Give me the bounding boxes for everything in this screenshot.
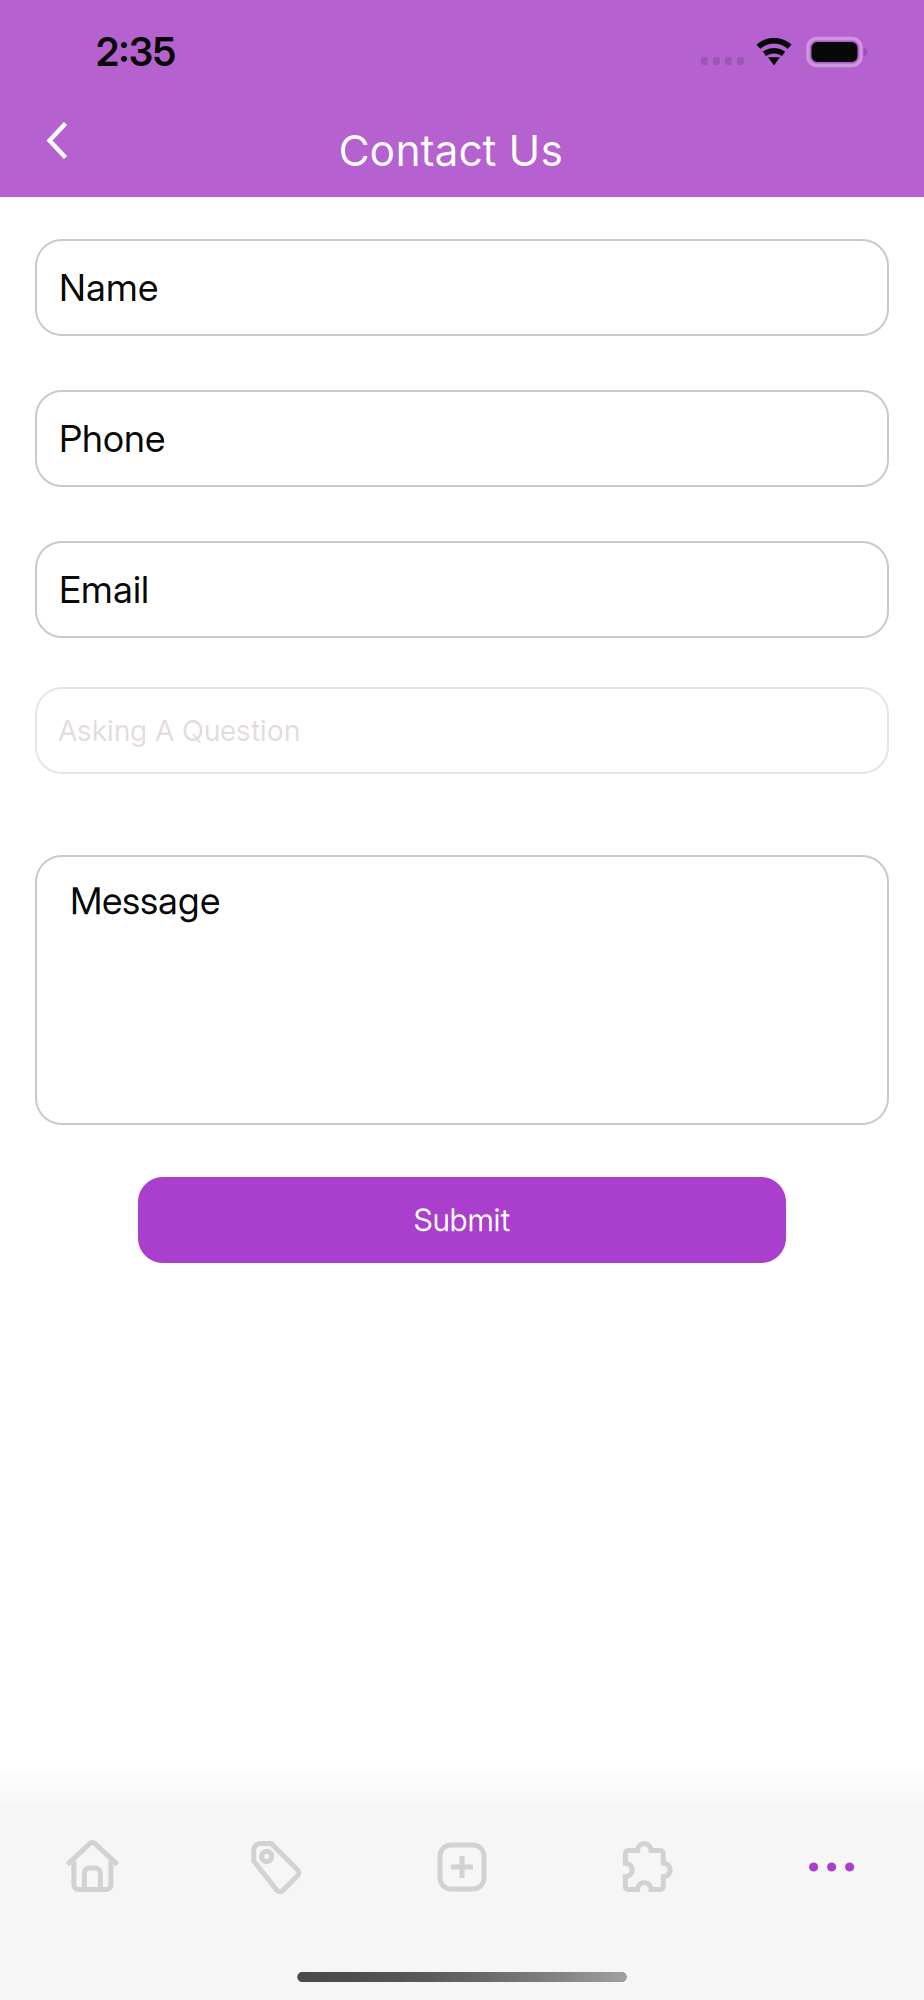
staticText: Message (70, 878, 220, 923)
button[interactable]: More (739, 1824, 924, 1910)
staticText: Name (59, 265, 158, 310)
button[interactable]: Home (0, 1824, 185, 1910)
staticText: Email (59, 567, 149, 612)
staticText: Submit (413, 1201, 510, 1238)
button[interactable]: Create (370, 1824, 554, 1910)
button[interactable]: Tags (185, 1824, 370, 1910)
button[interactable]: Submit (138, 1177, 786, 1263)
staticText: Phone (59, 416, 165, 461)
staticText: Asking A Question (58, 713, 300, 748)
button[interactable]: Extensions (554, 1824, 739, 1910)
staticText: Contact Us (338, 125, 563, 176)
staticText: 2:35 (96, 29, 176, 75)
button[interactable]: Back (22, 107, 103, 194)
